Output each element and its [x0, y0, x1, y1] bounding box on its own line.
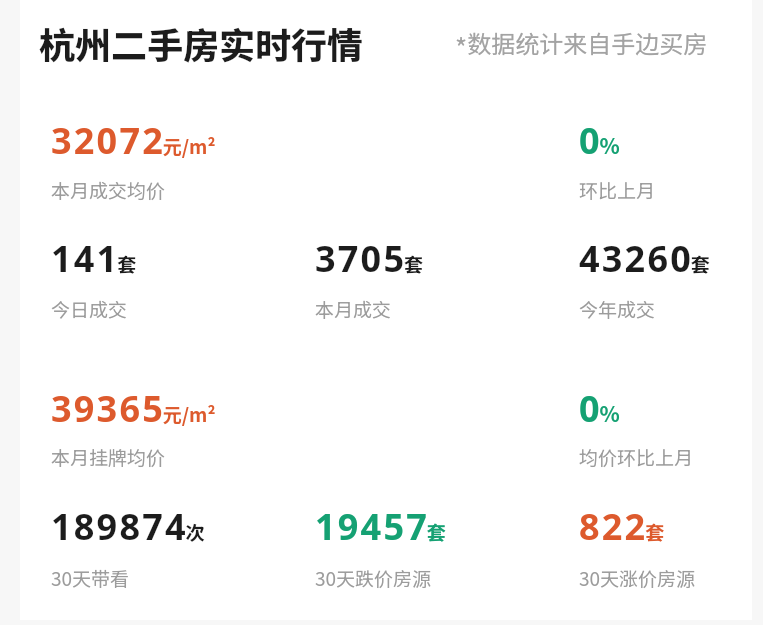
button[interactable]: 822套 — [579, 502, 749, 592]
staticText: 本月挂牌均价 — [51, 443, 166, 471]
staticText: 本月成交 — [315, 295, 392, 323]
staticText: 0% — [579, 384, 620, 433]
staticText: 3705套 — [315, 234, 423, 283]
staticText: 189874次 — [51, 502, 205, 551]
button[interactable]: 39365元/m² — [51, 384, 301, 471]
staticText: *数据统计来自手边买房 — [455, 25, 708, 66]
staticText: 今日成交 — [51, 295, 128, 323]
staticText: 30天带看 — [51, 564, 130, 592]
staticText: 0% — [579, 116, 620, 165]
staticText: 32072元/m² — [51, 116, 216, 165]
staticText: 杭州二手房实时行情 — [39, 17, 364, 69]
button[interactable]: 43260套 — [579, 234, 749, 323]
staticText: 39365元/m² — [51, 384, 216, 433]
staticText: 822套 — [579, 502, 665, 551]
button[interactable]: 0% — [579, 384, 749, 471]
button[interactable]: 32072元/m² — [51, 116, 301, 204]
button[interactable]: 189874次 — [51, 502, 301, 592]
staticText: 43260套 — [579, 234, 710, 283]
staticText: 本月成交均价 — [51, 176, 166, 204]
staticText: 30天涨价房源 — [579, 564, 696, 592]
staticText: 141套 — [51, 234, 137, 283]
staticText: 环比上月 — [579, 176, 656, 204]
staticText: 19457套 — [315, 502, 446, 551]
button[interactable]: 0% — [579, 116, 739, 204]
button[interactable]: 杭州二手房实时行情 — [39, 17, 364, 69]
staticText: 30天跌价房源 — [315, 564, 432, 592]
button[interactable]: 141套 — [51, 234, 301, 323]
button[interactable]: 3705套 — [315, 234, 565, 323]
staticText: 今年成交 — [579, 295, 656, 323]
staticText: 均价环比上月 — [579, 443, 694, 471]
button[interactable]: 19457套 — [315, 502, 565, 592]
